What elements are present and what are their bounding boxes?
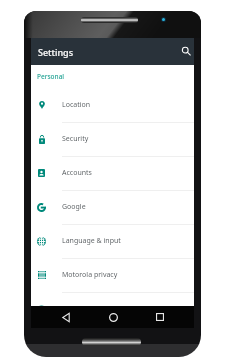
button[interactable]: Recents xyxy=(149,306,171,328)
staticText: Language & input xyxy=(62,236,121,246)
button[interactable]: System xyxy=(31,292,194,326)
staticText: Personal xyxy=(37,72,65,81)
staticText: Google xyxy=(62,202,86,212)
button[interactable]: Location xyxy=(31,88,194,122)
button[interactable]: Accounts xyxy=(31,156,194,190)
button[interactable]: Security xyxy=(31,122,194,156)
staticText: Security xyxy=(62,134,89,144)
staticText: Motorola privacy xyxy=(62,270,118,280)
button[interactable]: Home xyxy=(102,306,124,328)
button[interactable]: Google xyxy=(31,190,194,224)
button[interactable]: Search xyxy=(174,38,194,65)
button[interactable]: Back xyxy=(55,306,77,328)
button[interactable]: Motorola privacy xyxy=(31,258,194,292)
staticText: Settings xyxy=(38,46,74,58)
staticText: System xyxy=(62,304,86,314)
staticText: Location xyxy=(62,100,91,110)
staticText: Accounts xyxy=(62,168,92,178)
button[interactable]: Language & input xyxy=(31,224,194,258)
